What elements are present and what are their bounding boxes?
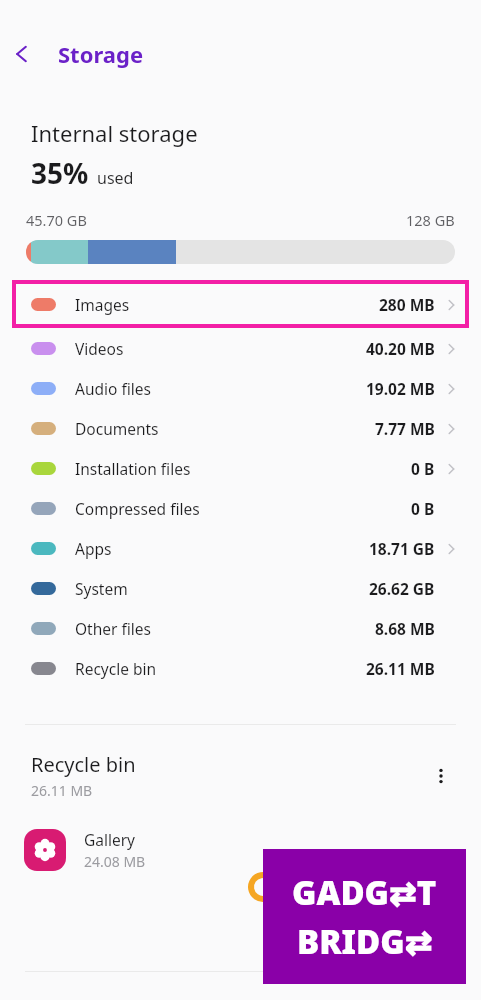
staticText: BRIDG⇄ xyxy=(297,919,433,964)
button[interactable]: More options xyxy=(423,758,459,794)
staticText: Audio files xyxy=(75,378,151,399)
button[interactable]: Gallery xyxy=(24,822,459,878)
button[interactable]: Images xyxy=(12,280,469,328)
staticText: Gallery xyxy=(84,829,136,850)
staticText: 26.11 MB xyxy=(31,781,93,800)
staticText: 26.62 GB xyxy=(369,578,435,599)
staticText: Apps xyxy=(75,538,112,559)
button[interactable]: Audio files xyxy=(0,368,481,408)
staticText: 128 GB xyxy=(406,210,455,230)
staticText: Other files xyxy=(75,618,151,639)
staticText: 24.08 MB xyxy=(84,852,146,871)
staticText: used xyxy=(97,167,134,189)
staticText: 0 B xyxy=(411,498,435,519)
staticText: 18.71 GB xyxy=(369,538,435,559)
button[interactable]: Videos xyxy=(0,328,481,368)
staticText: 26.11 MB xyxy=(366,658,435,679)
staticText: 280 MB xyxy=(379,294,435,315)
staticText: Installation files xyxy=(75,458,191,479)
button[interactable]: System xyxy=(0,568,481,608)
staticText: 7.77 MB xyxy=(375,418,435,439)
staticText: System xyxy=(75,578,128,599)
staticText: Storage xyxy=(58,39,144,69)
button[interactable]: Other files xyxy=(0,608,481,648)
staticText: 40.20 MB xyxy=(366,338,435,359)
button[interactable]: Recycle bin xyxy=(0,648,481,688)
staticText: 45.70 GB xyxy=(26,210,87,230)
staticText: Images xyxy=(75,294,130,315)
staticText: Compressed files xyxy=(75,498,200,519)
button[interactable]: Back xyxy=(0,32,44,76)
staticText: 0 B xyxy=(411,458,435,479)
staticText: 35% xyxy=(31,154,89,192)
staticText: GADG⇄T xyxy=(292,870,437,915)
staticText: 8.68 MB xyxy=(375,618,435,639)
button[interactable]: Compressed files xyxy=(0,488,481,528)
button[interactable]: Installation files xyxy=(0,448,481,488)
staticText: 19.02 MB xyxy=(366,378,435,399)
staticText: Videos xyxy=(75,338,124,359)
button[interactable]: Documents xyxy=(0,408,481,448)
staticText: Documents xyxy=(75,418,159,439)
button[interactable]: Apps xyxy=(0,528,481,568)
staticText: Internal storage xyxy=(31,118,198,148)
staticText: Recycle bin xyxy=(75,658,157,679)
staticText: Recycle bin xyxy=(31,751,136,778)
